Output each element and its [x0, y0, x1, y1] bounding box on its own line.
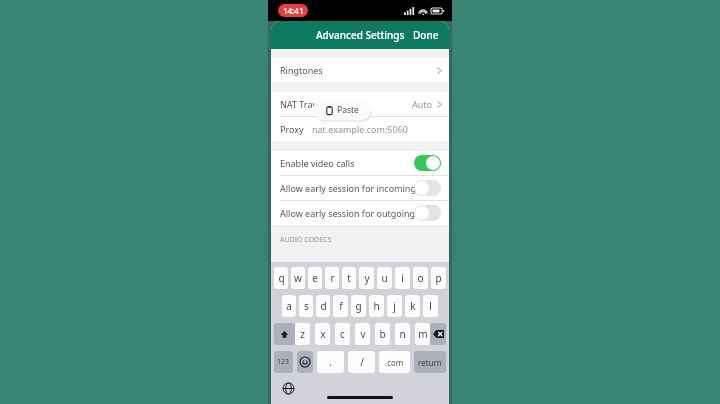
staticText: o: [417, 271, 424, 285]
staticText: Ringtones: [280, 64, 323, 76]
button[interactable]: p: [431, 267, 446, 289]
button[interactable]: f: [333, 295, 348, 317]
button[interactable]: c: [335, 323, 350, 345]
button[interactable]: NAT Traversal: [271, 92, 449, 116]
staticText: j: [393, 299, 396, 313]
button[interactable]: Change keyboard language: [281, 381, 295, 395]
staticText: u: [381, 271, 388, 285]
button[interactable]: a: [282, 295, 296, 317]
button[interactable]: Backspace: [430, 323, 446, 345]
staticText: return: [418, 357, 442, 368]
staticText: s: [304, 299, 309, 313]
staticText: AUDIO CODECS: [280, 235, 332, 245]
staticText: /: [360, 355, 364, 369]
staticText: q: [278, 271, 285, 285]
staticText: b: [379, 327, 386, 341]
button[interactable]: Shift: [274, 323, 295, 345]
staticText: f: [339, 299, 343, 313]
button[interactable]: s: [299, 295, 313, 317]
staticText: p: [435, 271, 442, 285]
button[interactable]: b: [375, 323, 390, 345]
button[interactable]: Enable video calls: [414, 155, 441, 171]
button[interactable]: d: [316, 295, 330, 317]
button[interactable]: i: [395, 267, 410, 289]
button[interactable]: g: [351, 295, 366, 317]
button[interactable]: 123: [274, 351, 293, 373]
button[interactable]: j: [387, 295, 402, 317]
button[interactable]: y: [359, 267, 374, 289]
staticText: a: [286, 299, 292, 313]
staticText: Paste: [337, 104, 359, 116]
staticText: x: [320, 327, 326, 341]
button[interactable]: Done: [403, 22, 449, 48]
button[interactable]: q: [274, 267, 288, 289]
staticText: Allow early session for incoming calls: [280, 182, 437, 194]
staticText: l: [429, 299, 432, 313]
button[interactable]: Paste: [313, 100, 371, 120]
staticText: z: [300, 327, 305, 341]
button[interactable]: Emoji: [297, 351, 313, 373]
staticText: h: [373, 299, 380, 313]
button[interactable]: e: [308, 267, 322, 289]
staticText: v: [360, 327, 366, 341]
button[interactable]: Proxy: [271, 117, 449, 141]
staticText: Allow early session for outgoing calls: [280, 207, 436, 219]
button[interactable]: w: [291, 267, 305, 289]
button[interactable]: return: [414, 351, 446, 373]
staticText: Auto: [412, 98, 433, 110]
button[interactable]: Ringtones: [271, 58, 449, 82]
staticText: 14:41: [283, 5, 304, 16]
button[interactable]: v: [355, 323, 370, 345]
button[interactable]: /: [348, 351, 375, 373]
button[interactable]: u: [377, 267, 392, 289]
staticText: r: [330, 271, 335, 285]
button[interactable]: Enable video calls: [271, 151, 449, 175]
button[interactable]: n: [395, 323, 410, 345]
staticText: Done: [413, 28, 439, 42]
staticText: .com: [385, 357, 404, 368]
button[interactable]: .com: [379, 351, 410, 373]
button[interactable]: k: [405, 295, 420, 317]
staticText: g: [355, 299, 362, 313]
staticText: Enable video calls: [280, 157, 355, 169]
button[interactable]: o: [413, 267, 428, 289]
staticText: m: [418, 327, 428, 341]
button[interactable]: x: [315, 323, 330, 345]
button[interactable]: Allow early session for outgoing calls: [414, 205, 441, 221]
staticText: e: [312, 271, 318, 285]
button[interactable]: r: [325, 267, 339, 289]
staticText: NAT Traversal: [280, 98, 338, 110]
staticText: d: [320, 299, 327, 313]
staticText: n: [399, 327, 406, 341]
button[interactable]: m: [415, 323, 430, 345]
staticText: 123: [277, 357, 290, 367]
staticText: w: [294, 271, 302, 285]
button[interactable]: .: [317, 351, 344, 373]
staticText: nat.example.com:5060: [312, 123, 408, 135]
staticText: Advanced Settings: [316, 28, 405, 42]
button[interactable]: z: [295, 323, 310, 345]
staticText: y: [364, 271, 370, 285]
staticText: Proxy: [280, 123, 304, 135]
staticText: k: [410, 299, 416, 313]
button[interactable]: t: [342, 267, 356, 289]
button[interactable]: Allow early session for incoming calls: [271, 176, 449, 200]
staticText: t: [347, 271, 351, 285]
staticText: .: [329, 355, 332, 369]
button[interactable]: Allow early session for outgoing calls: [271, 201, 449, 225]
button[interactable]: h: [369, 295, 384, 317]
staticText: i: [401, 271, 404, 285]
button[interactable]: l: [423, 295, 438, 317]
button[interactable]: Allow early session for incoming calls: [414, 180, 441, 196]
staticText: c: [340, 327, 345, 341]
